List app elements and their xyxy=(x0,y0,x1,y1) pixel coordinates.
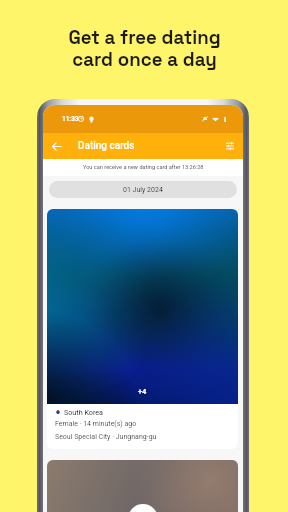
staticText: You can receive a new dating card after … xyxy=(83,164,204,171)
button[interactable]: +1 xyxy=(47,460,238,512)
button[interactable]: 01 July 2024 xyxy=(49,181,237,198)
staticText: South Korea xyxy=(64,408,104,416)
staticText: 01 July 2024 xyxy=(123,186,163,194)
button[interactable]: Back xyxy=(47,137,65,155)
staticText: Female · 14 minute(s) ago xyxy=(55,420,137,428)
staticText: 11:33 xyxy=(62,115,79,123)
staticText: Dating cards xyxy=(78,140,135,152)
button[interactable]: +4 xyxy=(47,209,238,449)
staticText: Seoul Special City · Jungnang-gu xyxy=(55,433,157,441)
staticText: +4 xyxy=(138,387,147,396)
button[interactable]: Filter xyxy=(221,137,239,155)
staticText: Get a free dating card once a day xyxy=(68,26,221,71)
